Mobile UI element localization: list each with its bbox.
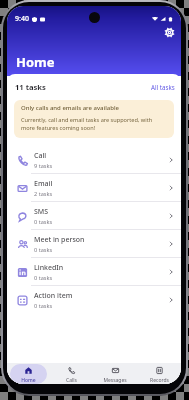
staticText: Email [34, 179, 53, 189]
button[interactable]: Call [7, 146, 181, 174]
staticText: 9:40 [15, 14, 29, 24]
button[interactable]: Calls [50, 363, 93, 384]
button[interactable]: SMS [7, 202, 181, 230]
staticText: 0 tasks [34, 218, 53, 226]
button[interactable]: LinkedIn [7, 258, 181, 286]
staticText: 0 tasks [34, 274, 53, 282]
staticText: LinkedIn [34, 263, 64, 273]
staticText: 0 tasks [34, 246, 53, 254]
staticText: All tasks [151, 83, 175, 91]
staticText: Action item [34, 291, 73, 301]
button[interactable]: All tasks [151, 83, 175, 91]
button[interactable]: Email [7, 174, 181, 202]
staticText: 11 tasks [15, 82, 46, 92]
button[interactable]: Messages [93, 363, 137, 384]
button[interactable]: Meet in person [7, 230, 181, 258]
staticText: Only calls and emails are available [21, 104, 119, 112]
staticText: 9 tasks [34, 162, 53, 170]
staticText: Calls [66, 377, 77, 384]
staticText: 0 tasks [34, 302, 53, 310]
button[interactable]: Settings [160, 23, 178, 41]
staticText: Records [150, 377, 169, 384]
staticText: Call [34, 151, 47, 161]
button[interactable]: Records [137, 363, 181, 384]
staticText: 2 tasks [34, 190, 53, 198]
staticText: Messages [103, 377, 127, 384]
button[interactable]: Home [7, 363, 50, 384]
staticText: Meet in person [34, 235, 85, 245]
staticText: Currently, call and email tasks are supp… [21, 116, 153, 132]
staticText: SMS [34, 207, 49, 217]
button[interactable]: Action item [7, 286, 181, 314]
staticText: Home [21, 377, 36, 384]
staticText: Home [16, 53, 55, 71]
